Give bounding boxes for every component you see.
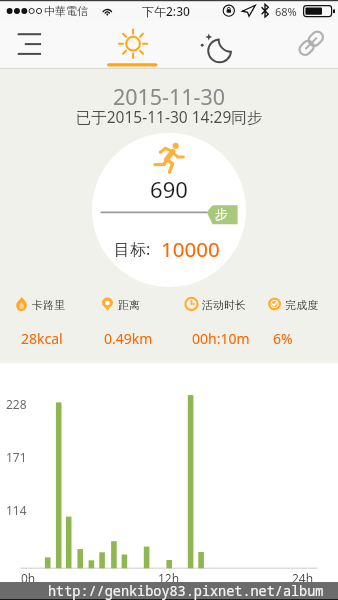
staticText: 中華電信 xyxy=(44,4,88,18)
staticText: 228 xyxy=(6,396,27,412)
button[interactable]: Day xyxy=(84,22,168,69)
staticText: 卡路里 xyxy=(32,298,65,312)
staticText: 171 xyxy=(6,449,27,465)
staticText: 下午2:30 xyxy=(142,3,190,19)
button[interactable] xyxy=(11,291,91,347)
staticText: 12h xyxy=(158,570,180,586)
staticText: http://genkiboy83.pixnet.net/album xyxy=(48,582,324,600)
staticText: 步 xyxy=(215,206,228,222)
button[interactable] xyxy=(97,291,177,347)
staticText: 00h:10m xyxy=(192,329,250,348)
staticText: 10000 xyxy=(161,235,220,263)
button[interactable]: Menu xyxy=(0,22,84,69)
staticText: 114 xyxy=(6,502,27,518)
staticText: 已于2015-11-30 14:29同步 xyxy=(0,106,338,127)
staticText: 2015-11-30 xyxy=(0,82,338,111)
staticText: 690 xyxy=(0,174,338,204)
staticText: 距离 xyxy=(118,298,140,312)
button[interactable] xyxy=(181,291,261,347)
staticText: 28kcal xyxy=(21,329,63,348)
staticText: 0.49km xyxy=(104,329,153,348)
staticText: 0h xyxy=(21,570,36,586)
staticText: 目标: xyxy=(114,238,151,260)
button[interactable]: Night xyxy=(168,22,252,69)
staticText: 6% xyxy=(273,329,293,348)
staticText: 24h xyxy=(292,570,314,586)
staticText: 完成度 xyxy=(285,298,318,312)
button[interactable] xyxy=(264,291,338,347)
staticText: 68% xyxy=(275,4,297,19)
staticText: 活动时长 xyxy=(202,298,246,312)
button[interactable]: Link xyxy=(252,22,338,69)
